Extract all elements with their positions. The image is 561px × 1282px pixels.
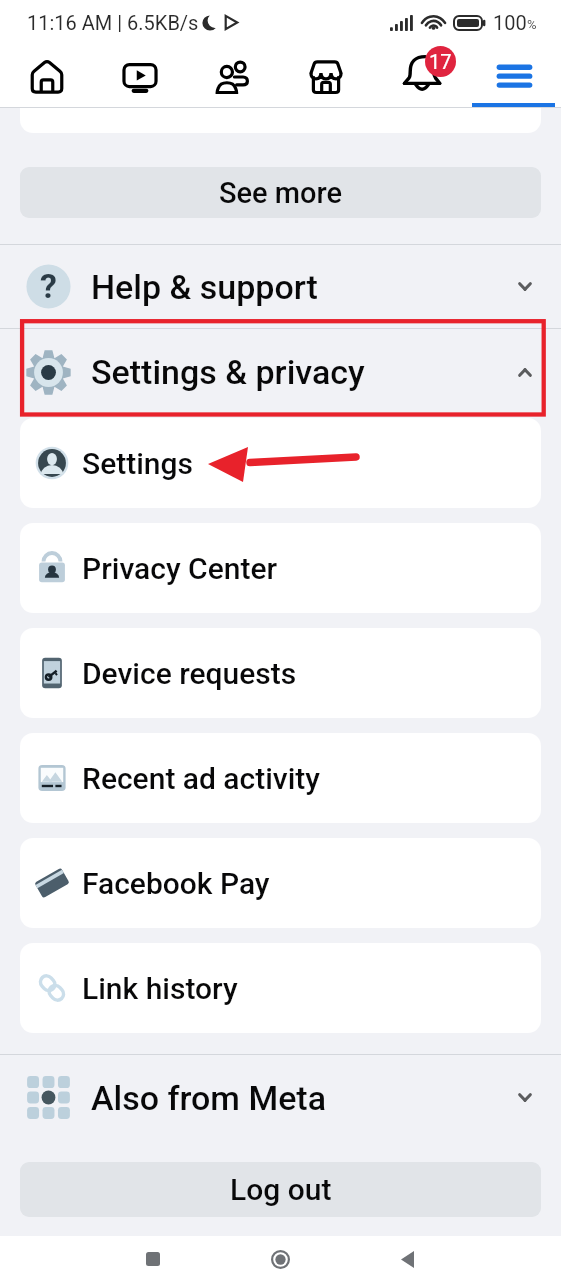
button[interactable]: Video bbox=[93, 45, 186, 108]
staticText: Help & support bbox=[91, 267, 318, 307]
button[interactable]: Also from Meta bbox=[0, 1055, 561, 1140]
button[interactable]: Privacy Center bbox=[20, 523, 541, 613]
staticText: 17 bbox=[429, 50, 452, 73]
staticText: Device requests bbox=[82, 656, 297, 691]
button[interactable]: Recent ad activity bbox=[20, 733, 541, 823]
button[interactable]: Facebook Pay bbox=[20, 838, 541, 928]
button[interactable]: Back bbox=[386, 1238, 428, 1280]
button[interactable]: Home bbox=[0, 45, 93, 108]
button[interactable]: Log out bbox=[20, 1162, 541, 1217]
button[interactable]: Marketplace bbox=[279, 45, 373, 108]
button[interactable]: Recents bbox=[132, 1238, 174, 1280]
staticText: Also from Meta bbox=[91, 1078, 326, 1118]
staticText: Log out bbox=[230, 1172, 332, 1207]
staticText: See more bbox=[219, 176, 343, 210]
staticText: Recent ad activity bbox=[82, 761, 321, 796]
button[interactable]: Notifications bbox=[373, 45, 467, 108]
button[interactable]: Friends bbox=[186, 45, 279, 108]
staticText: ? bbox=[40, 266, 57, 306]
staticText: % bbox=[527, 17, 537, 32]
staticText: Facebook Pay bbox=[82, 866, 270, 901]
button[interactable]: Link history bbox=[20, 943, 541, 1033]
button[interactable]: See more bbox=[20, 167, 541, 218]
button[interactable]: Settings bbox=[20, 418, 541, 508]
button[interactable]: Settings & privacy bbox=[0, 329, 561, 415]
button[interactable]: Menu bbox=[467, 45, 561, 108]
button[interactable]: Home bbox=[259, 1238, 301, 1280]
button[interactable]: ? bbox=[0, 245, 561, 328]
staticText: Link history bbox=[82, 971, 238, 1006]
staticText: 100 bbox=[493, 11, 527, 34]
staticText: Settings & privacy bbox=[91, 352, 365, 392]
staticText: 11:16 AM | 6.5KB/s bbox=[27, 11, 199, 34]
staticText: Settings bbox=[82, 446, 194, 481]
staticText: Privacy Center bbox=[82, 551, 278, 586]
button[interactable]: Device requests bbox=[20, 628, 541, 718]
